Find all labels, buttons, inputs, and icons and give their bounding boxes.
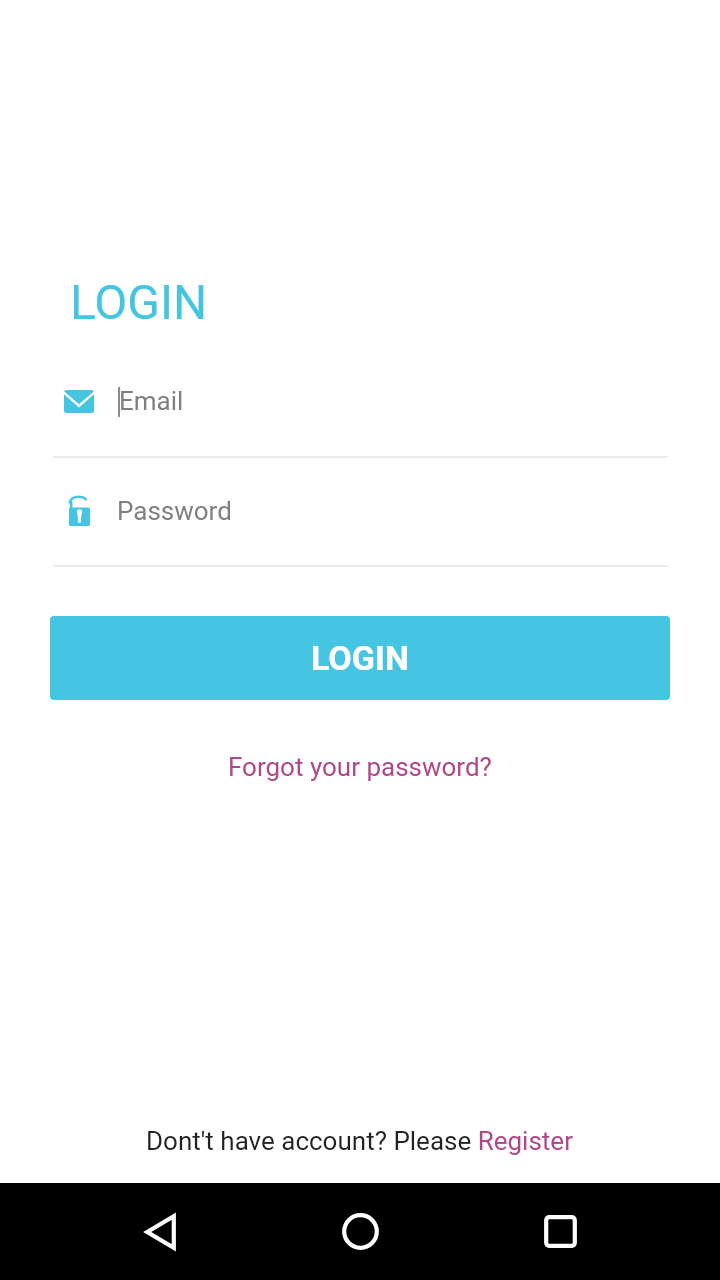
button[interactable]: Back <box>100 1183 220 1280</box>
button[interactable]: Home <box>300 1183 420 1280</box>
button[interactable]: Email <box>53 378 668 444</box>
staticText: LOGIN <box>311 638 409 678</box>
staticText: Password <box>117 496 232 526</box>
button[interactable]: Dont't have account? Please Register <box>146 1126 573 1156</box>
button[interactable]: Password <box>53 487 668 553</box>
button[interactable]: Recents <box>500 1183 620 1280</box>
staticText: Email <box>119 386 184 416</box>
staticText: LOGIN <box>70 274 208 330</box>
button[interactable]: Forgot your password? <box>212 744 508 790</box>
staticText: Forgot your password? <box>228 752 492 782</box>
button[interactable]: LOGIN <box>50 616 670 700</box>
